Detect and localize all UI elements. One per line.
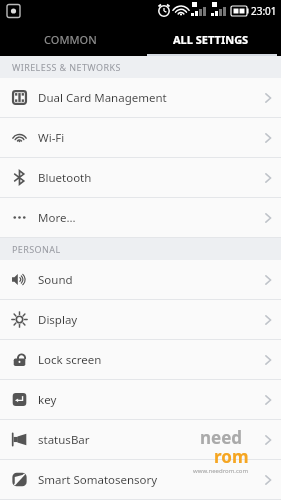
staticText: COMMON (44, 32, 97, 47)
staticText: Display (38, 312, 261, 328)
button[interactable]: key (0, 380, 281, 420)
staticText: WIRELESS & NETWORKS (12, 61, 121, 73)
button[interactable]: COMMON (0, 22, 140, 56)
staticText: Dual Card Management (38, 90, 261, 106)
button[interactable]: Dual Card Management (0, 78, 281, 118)
staticText: www.needrom.com (193, 467, 249, 475)
button[interactable]: Sound (0, 260, 281, 300)
staticText: Lock screen (38, 352, 261, 368)
button[interactable]: Display (0, 300, 281, 340)
button[interactable]: Bluetooth (0, 158, 281, 198)
staticText: statusBar (38, 432, 261, 448)
button[interactable]: Lock screen (0, 340, 281, 380)
staticText: need (200, 426, 243, 449)
staticText: rom (214, 445, 249, 468)
staticText: Sound (38, 272, 261, 288)
staticText: key (38, 392, 261, 408)
staticText: More... (38, 210, 261, 226)
button[interactable]: More... (0, 198, 281, 238)
button[interactable]: statusBar (0, 420, 281, 460)
button[interactable]: ALL SETTINGS (140, 22, 281, 56)
button[interactable]: Smart Somatosensory (0, 460, 281, 500)
staticText: 23:01 (251, 4, 277, 18)
staticText: Wi-Fi (38, 130, 261, 146)
staticText: PERSONAL (12, 243, 61, 255)
staticText: Bluetooth (38, 170, 261, 186)
button[interactable]: Wi-Fi (0, 118, 281, 158)
staticText: Smart Somatosensory (38, 472, 261, 488)
staticText: ALL SETTINGS (173, 32, 249, 47)
